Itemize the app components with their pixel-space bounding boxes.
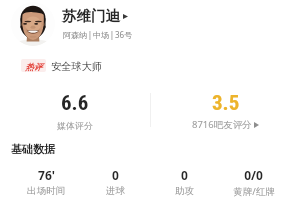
staticText: 进球 <box>106 185 125 197</box>
staticText: 0 <box>112 167 119 183</box>
staticText: 76' <box>38 167 55 183</box>
staticText: 黄牌/红牌 <box>233 185 275 198</box>
staticText: 出场时间 <box>27 185 65 197</box>
button[interactable]: 0/0 <box>219 167 288 198</box>
staticText: 媒体评分 <box>57 120 93 131</box>
staticText: 6.6 <box>61 91 89 116</box>
staticText: 阿森纳 | 中场 | 36号 <box>63 29 133 40</box>
staticText: 苏维门迪 <box>62 7 120 25</box>
staticText: 热评 <box>25 62 43 72</box>
button[interactable]: 热评 <box>21 58 102 71</box>
button[interactable]: 76' <box>11 167 81 197</box>
button[interactable]: Player avatar <box>11 2 55 46</box>
staticText: 8716吧友评分 <box>192 118 252 131</box>
staticText: 0/0 <box>244 167 263 183</box>
button[interactable]: 0 <box>150 167 219 197</box>
button[interactable]: 苏维门迪 <box>62 7 128 25</box>
staticText: 基础数据 <box>11 142 55 156</box>
staticText: 0 <box>181 167 188 183</box>
button[interactable]: 3.5 <box>150 91 300 133</box>
button[interactable]: 0 <box>81 167 150 197</box>
button[interactable]: 6.6 <box>0 91 150 133</box>
staticText: 3.5 <box>212 91 240 116</box>
staticText: 安全球大师 <box>51 60 102 73</box>
staticText: 助攻 <box>175 185 194 197</box>
